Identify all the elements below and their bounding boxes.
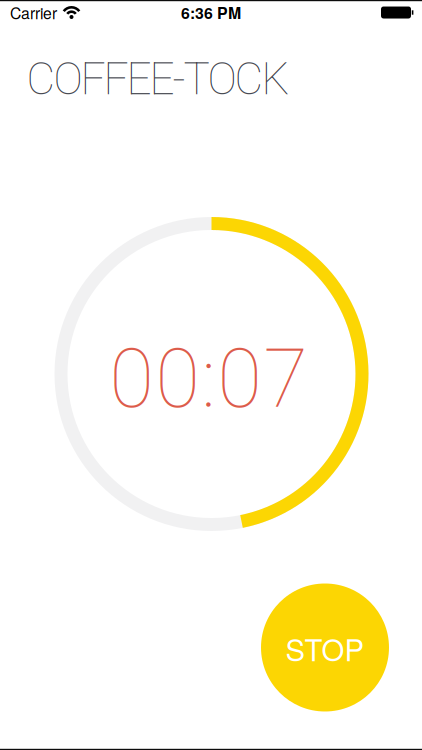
button[interactable]: STOP (261, 583, 389, 711)
staticText: 00:07 (109, 331, 307, 426)
staticText: COFFEE-TOCK (26, 53, 289, 105)
staticText: 6:36 PM (181, 1, 241, 24)
staticText: STOP (285, 627, 364, 669)
staticText: Carrier (10, 1, 57, 24)
